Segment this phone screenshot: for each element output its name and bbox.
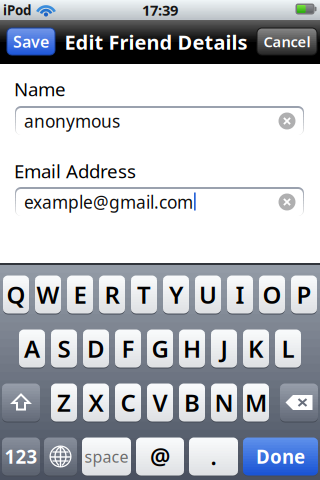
- button[interactable]: Q: [3, 275, 29, 314]
- button[interactable]: B: [179, 383, 205, 422]
- staticText: 123: [4, 444, 37, 469]
- button[interactable]: I: [227, 275, 253, 314]
- staticText: M: [245, 387, 267, 418]
- staticText: Edit Friend Details: [64, 29, 247, 55]
- button[interactable]: R: [99, 275, 125, 314]
- button[interactable]: A: [19, 329, 45, 368]
- staticText: space: [84, 446, 128, 467]
- staticText: P: [296, 279, 311, 310]
- button[interactable]: H: [179, 329, 205, 368]
- staticText: Z: [57, 387, 71, 418]
- button[interactable]: G: [147, 329, 173, 368]
- staticText: Name: [14, 77, 66, 101]
- button[interactable]: Cancel: [257, 28, 317, 55]
- button[interactable]: F: [115, 329, 141, 368]
- staticText: D: [87, 333, 105, 364]
- button[interactable]: K: [243, 329, 269, 368]
- button[interactable]: Save: [7, 28, 55, 55]
- button[interactable]: N: [211, 383, 237, 422]
- button[interactable]: T: [131, 275, 157, 314]
- button[interactable]: D: [83, 329, 109, 368]
- staticText: O: [262, 279, 281, 310]
- button[interactable]: J: [211, 329, 237, 368]
- staticText: Done: [256, 444, 305, 469]
- staticText: Save: [13, 31, 49, 52]
- button[interactable]: Done: [243, 437, 318, 476]
- button[interactable]: X: [83, 383, 109, 422]
- staticText: B: [184, 387, 200, 418]
- staticText: H: [183, 333, 201, 364]
- staticText: T: [137, 279, 151, 310]
- staticText: J: [220, 333, 227, 364]
- staticText: 17:39: [142, 0, 178, 20]
- staticText: F: [121, 333, 134, 364]
- button[interactable]: E: [67, 275, 93, 314]
- button[interactable]: Delete: [280, 383, 318, 422]
- staticText: E: [73, 279, 86, 310]
- staticText: W: [36, 279, 59, 310]
- staticText: Cancel: [263, 32, 310, 51]
- staticText: I: [235, 279, 244, 310]
- staticText: U: [199, 279, 217, 310]
- button[interactable]: Z: [51, 383, 77, 422]
- staticText: A: [24, 333, 40, 364]
- button[interactable]: @: [136, 437, 184, 476]
- button[interactable]: P: [291, 275, 317, 314]
- staticText: Y: [169, 279, 183, 310]
- button[interactable]: C: [115, 383, 141, 422]
- staticText: Email Address: [14, 159, 136, 183]
- button[interactable]: Clear text: [276, 191, 298, 213]
- staticText: K: [248, 333, 264, 364]
- button[interactable]: L: [275, 329, 301, 368]
- staticText: Q: [6, 279, 25, 310]
- staticText: N: [214, 387, 233, 418]
- button[interactable]: Next keyboard: [44, 437, 77, 476]
- staticText: L: [281, 333, 294, 364]
- button[interactable]: .: [189, 437, 238, 476]
- staticText: G: [151, 333, 168, 364]
- button[interactable]: W: [35, 275, 61, 314]
- button[interactable]: O: [259, 275, 285, 314]
- button[interactable]: Numbers: [2, 437, 40, 476]
- button[interactable]: U: [195, 275, 221, 314]
- staticText: @: [150, 441, 170, 471]
- staticText: .: [210, 441, 216, 471]
- staticText: V: [152, 387, 167, 418]
- staticText: C: [120, 387, 135, 418]
- staticText: S: [57, 333, 70, 364]
- staticText: anonymous: [24, 109, 120, 132]
- button[interactable]: Clear text: [276, 110, 298, 132]
- button[interactable]: space: [82, 437, 131, 476]
- button[interactable]: S: [51, 329, 77, 368]
- staticText: iPod: [3, 1, 31, 19]
- button[interactable]: Shift: [2, 383, 40, 422]
- button[interactable]: Y: [163, 275, 189, 314]
- staticText: R: [104, 279, 119, 310]
- button[interactable]: M: [243, 383, 269, 422]
- staticText: example@gmail.com: [24, 190, 193, 213]
- button[interactable]: V: [147, 383, 173, 422]
- staticText: X: [88, 387, 103, 418]
